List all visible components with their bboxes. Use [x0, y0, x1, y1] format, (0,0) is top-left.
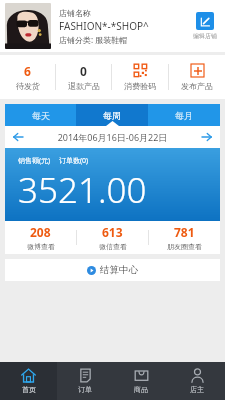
staticText: 613: [102, 224, 123, 240]
staticText: 微博查看: [27, 242, 55, 251]
button[interactable]: 首页: [0, 362, 57, 400]
staticText: 待发货: [16, 81, 40, 91]
staticText: 发布产品: [181, 81, 213, 91]
button[interactable]: 店主: [169, 362, 225, 400]
button[interactable]: 613: [77, 221, 148, 254]
staticText: 微信查看: [99, 242, 127, 251]
button[interactable]: 0: [56, 55, 111, 99]
staticText: 订单: [78, 385, 92, 394]
staticText: 208: [30, 224, 51, 240]
staticText: 首页: [22, 385, 36, 394]
staticText: 店主: [190, 385, 204, 394]
staticText: 每天: [32, 110, 50, 121]
button[interactable]: 商品: [113, 362, 169, 400]
button[interactable]: 结算中心: [5, 259, 220, 281]
staticText: 2014年06月16日-06月22日: [26, 131, 199, 143]
button[interactable]: 编辑店铺: [190, 10, 220, 42]
staticText: 0: [80, 63, 87, 78]
button[interactable]: 每天: [5, 104, 76, 126]
staticText: FASHION*-*SHOP^: [59, 19, 149, 33]
staticText: 店铺分类: 服装鞋帽: [59, 34, 128, 45]
staticText: 订单数(0): [59, 156, 89, 166]
staticText: 结算中心: [100, 264, 138, 276]
staticText: 每月: [175, 110, 193, 121]
button[interactable]: 上一周: [10, 129, 26, 145]
staticText: 退款产品: [68, 81, 100, 91]
staticText: 编辑店铺: [193, 32, 217, 40]
button[interactable]: 下一周: [199, 129, 215, 145]
button[interactable]: 每月: [148, 104, 220, 126]
button[interactable]: 781: [149, 221, 220, 254]
button[interactable]: 订单: [57, 362, 113, 400]
staticText: 消费验码: [124, 81, 156, 91]
staticText: 商品: [134, 385, 148, 394]
staticText: 店铺名称: [59, 8, 91, 18]
staticText: 每周: [103, 110, 121, 121]
button[interactable]: 208: [5, 221, 76, 254]
staticText: 3521.00: [18, 166, 147, 214]
staticText: 朋友圈查看: [167, 242, 202, 251]
button[interactable]: 每周: [76, 104, 148, 126]
staticText: 6: [24, 63, 31, 78]
button[interactable]: 发布产品: [169, 55, 225, 99]
button[interactable]: 6: [0, 55, 55, 99]
staticText: 781: [174, 224, 195, 240]
staticText: 销售额(元): [18, 156, 51, 166]
button[interactable]: 消费验码: [112, 55, 168, 99]
